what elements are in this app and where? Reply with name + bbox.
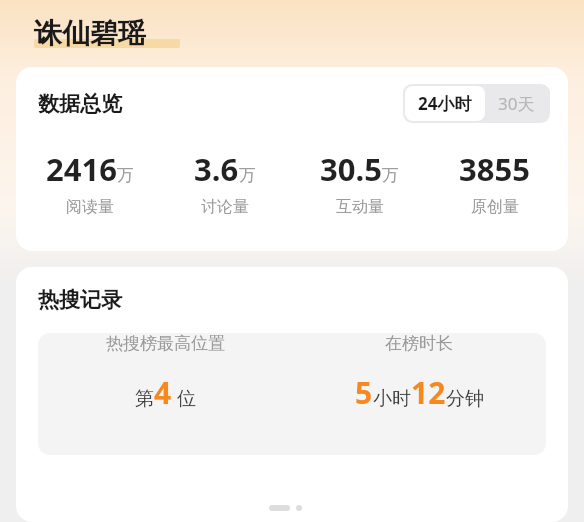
staticText: 分钟	[446, 387, 484, 411]
staticText: 3.6	[194, 148, 239, 190]
staticText: 数据总览	[38, 91, 122, 117]
staticText: 位	[172, 385, 196, 411]
staticText: 2416	[46, 148, 117, 190]
staticText: 原创量	[471, 197, 519, 217]
staticText: 第	[135, 387, 154, 411]
staticText: 在榜时长	[385, 333, 453, 354]
staticText: 12	[411, 372, 446, 413]
button[interactable]: 热搜榜最高位置	[38, 333, 546, 455]
button[interactable]: 诛仙碧瑶	[34, 16, 180, 51]
staticText: 诛仙碧瑶	[34, 16, 146, 51]
staticText: 热搜记录	[38, 287, 122, 313]
staticText: 30.5	[320, 148, 382, 190]
staticText: 万	[117, 165, 134, 186]
staticText: 互动量	[336, 197, 384, 217]
staticText: 24小时	[418, 92, 472, 115]
staticText: 3855	[459, 148, 530, 190]
button[interactable]: 30天	[485, 86, 548, 121]
button[interactable]: 24小时	[405, 86, 485, 121]
staticText: 30天	[498, 92, 535, 115]
staticText: 阅读量	[66, 197, 114, 217]
staticText: 万	[382, 165, 399, 186]
staticText: 讨论量	[201, 197, 249, 217]
staticText: 万	[239, 165, 256, 186]
other: Page 1 indicator	[269, 505, 290, 511]
other: Page 2 indicator	[296, 505, 302, 511]
staticText: 5	[355, 372, 373, 413]
staticText: 热搜榜最高位置	[106, 333, 225, 354]
staticText: 小时	[373, 387, 411, 411]
staticText: 4	[154, 372, 172, 413]
